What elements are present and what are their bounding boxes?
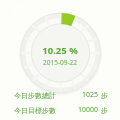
staticText: 今日步數總計 [14, 91, 56, 100]
staticText: 10.25 % [42, 44, 78, 57]
staticText: 步 [101, 106, 108, 115]
button[interactable]: Daily step progress ring [0, 0, 120, 96]
staticText: 1025 [82, 90, 99, 100]
staticText: 今日目標步數 [14, 106, 56, 115]
button[interactable]: 今日目標步數 [14, 104, 108, 116]
staticText: 10000 [78, 105, 99, 115]
staticText: 步 [101, 91, 108, 100]
staticText: 2015-09-22 [43, 58, 77, 67]
button[interactable]: 今日步數總計 [14, 89, 108, 101]
